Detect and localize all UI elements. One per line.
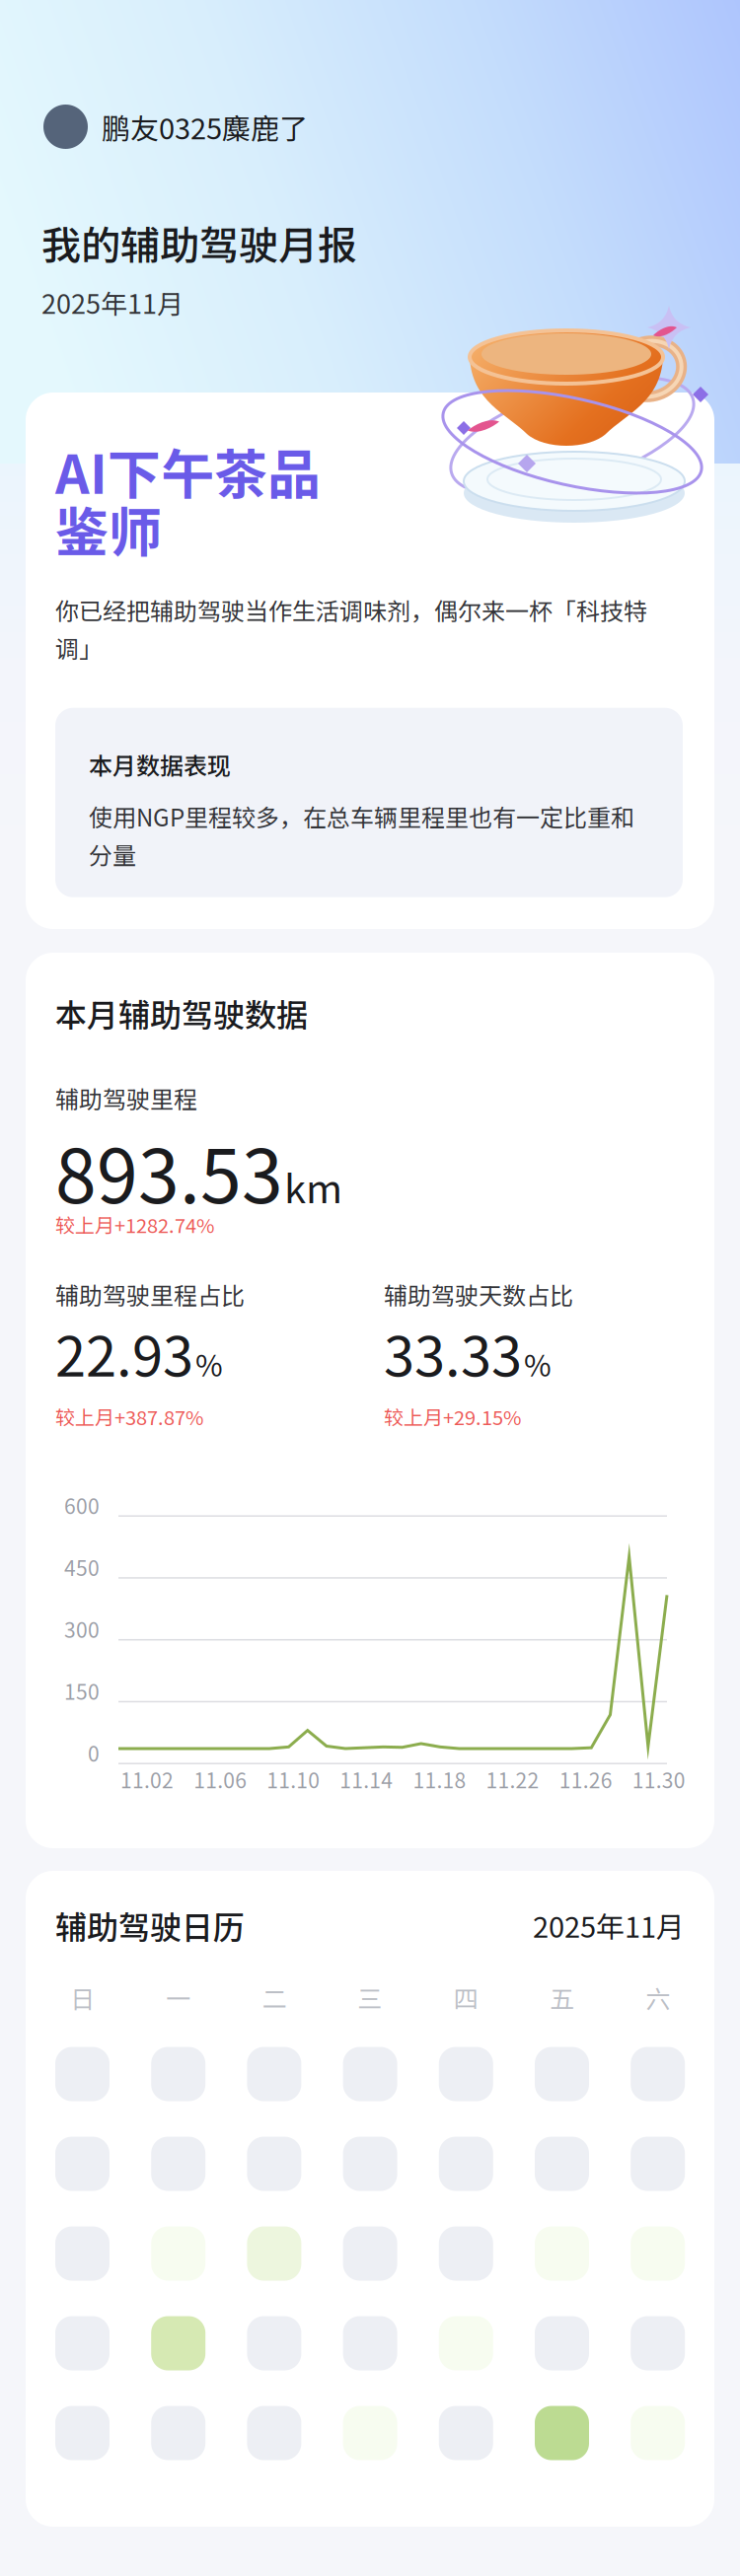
button[interactable]: 11月10日 <box>247 2137 343 2191</box>
staticText: 11.22 <box>486 1764 539 1794</box>
staticText: 鹏友0325麋鹿了 <box>102 106 308 147</box>
button[interactable]: 11月14日 <box>631 2137 727 2191</box>
staticText: 日 <box>70 1980 95 2015</box>
button[interactable]: 11月23日 <box>151 2316 247 2370</box>
button[interactable]: 11月26日 <box>439 2316 535 2370</box>
button[interactable]: 11月9日 <box>151 2137 247 2191</box>
button[interactable]: 11月1日 <box>55 2047 151 2101</box>
staticText: 你已经把辅助驾驶当作生活调味剂，偶尔来一杯「科技特调」 <box>55 591 647 666</box>
button[interactable]: 11月25日 <box>343 2316 439 2370</box>
button[interactable]: 11月8日 <box>55 2137 151 2191</box>
staticText: 六 <box>645 1980 670 2015</box>
button[interactable]: 11月16日 <box>151 2226 247 2281</box>
staticText: 893.53 <box>55 1117 283 1224</box>
staticText: 11.02 <box>120 1764 174 1794</box>
staticText: 本月辅助驾驶数据 <box>55 990 308 1036</box>
staticText: km <box>284 1157 342 1215</box>
staticText: % <box>524 1342 552 1385</box>
staticText: 0 <box>88 1738 100 1768</box>
button[interactable]: 11月4日 <box>343 2047 439 2101</box>
button[interactable]: 11月17日 <box>247 2226 343 2281</box>
staticText: 本月数据表现 <box>89 747 231 782</box>
staticText: 四 <box>454 1980 478 2015</box>
staticText: 11.26 <box>559 1764 612 1794</box>
staticText: 11.14 <box>340 1764 393 1794</box>
staticText: 450 <box>64 1552 100 1582</box>
button[interactable]: 11月22日 <box>55 2316 151 2370</box>
button[interactable]: 11月3日 <box>247 2047 343 2101</box>
button[interactable]: 11月2日 <box>151 2047 247 2101</box>
staticText: 较上月+387.87% <box>55 1402 203 1431</box>
button[interactable]: 11月20日 <box>535 2226 631 2281</box>
button[interactable]: 11月33日 <box>439 2406 535 2460</box>
staticText: 辅助驾驶里程占比 <box>55 1277 245 1311</box>
staticText: 辅助驾驶里程 <box>55 1081 197 1115</box>
staticText: 11.18 <box>413 1764 466 1794</box>
staticText: 300 <box>64 1614 100 1644</box>
button[interactable]: 11月35日 <box>631 2406 727 2460</box>
staticText: 2025年11月 <box>533 1905 685 1946</box>
staticText: 我的辅助驾驶月报 <box>41 214 357 271</box>
staticText: 较上月+1282.74% <box>55 1210 214 1239</box>
staticText: 辅助驾驶天数占比 <box>384 1277 573 1311</box>
staticText: 辅助驾驶日历 <box>55 1902 245 1948</box>
button[interactable]: 11月28日 <box>631 2316 727 2370</box>
staticText: 2025年11月 <box>41 283 184 322</box>
staticText: 33.33 <box>384 1312 522 1392</box>
button[interactable]: 11月6日 <box>535 2047 631 2101</box>
staticText: 600 <box>64 1490 100 1520</box>
staticText: 较上月+29.15% <box>384 1402 521 1431</box>
button[interactable]: 11月7日 <box>631 2047 727 2101</box>
button[interactable]: 11月34日 <box>535 2406 631 2460</box>
staticText: 三 <box>358 1980 382 2015</box>
staticText: 22.93 <box>55 1312 193 1392</box>
staticText: 150 <box>64 1676 100 1706</box>
button[interactable]: 11月11日 <box>343 2137 439 2191</box>
button[interactable]: 11月19日 <box>439 2226 535 2281</box>
staticText: 五 <box>550 1980 574 2015</box>
button[interactable]: 11月30日 <box>151 2406 247 2460</box>
button[interactable]: 鹏友0325麋鹿了 <box>43 105 308 149</box>
staticText: 11.06 <box>193 1764 247 1794</box>
staticText: 11.10 <box>267 1764 320 1794</box>
button[interactable]: 11月13日 <box>535 2137 631 2191</box>
button[interactable]: 11月32日 <box>343 2406 439 2460</box>
button[interactable]: 11月27日 <box>535 2316 631 2370</box>
button[interactable]: 11月29日 <box>55 2406 151 2460</box>
staticText: 一 <box>166 1980 191 2015</box>
button[interactable]: 11月5日 <box>439 2047 535 2101</box>
button[interactable]: 11月18日 <box>343 2226 439 2281</box>
button[interactable]: 11月12日 <box>439 2137 535 2191</box>
button[interactable]: 11月21日 <box>631 2226 727 2281</box>
staticText: % <box>195 1342 223 1385</box>
button[interactable]: 11月24日 <box>247 2316 343 2370</box>
staticText: 使用NGP里程较多，在总车辆里程里也有一定比重和分量 <box>89 797 634 873</box>
button[interactable]: 11月31日 <box>247 2406 343 2460</box>
staticText: 二 <box>262 1980 287 2015</box>
button[interactable]: 11月15日 <box>55 2226 151 2281</box>
staticText: 11.30 <box>632 1764 686 1794</box>
staticText: AI下午茶品 鉴师 <box>55 442 321 558</box>
